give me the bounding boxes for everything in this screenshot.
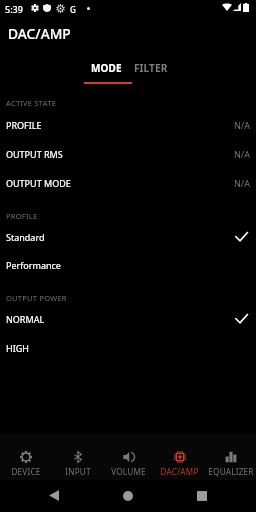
staticText: EQUALIZER <box>208 466 254 477</box>
button[interactable]: PROFILE <box>0 110 256 139</box>
staticText: NORMAL <box>6 313 45 325</box>
other: Selected <box>234 229 249 244</box>
button[interactable]: OUTPUT MODE <box>0 168 256 197</box>
staticText: N/A <box>234 148 250 160</box>
staticText: N/A <box>234 119 250 131</box>
staticText: HIGH <box>6 342 29 354</box>
staticText: Performance <box>6 259 61 271</box>
button[interactable]: VOLUME <box>103 434 154 480</box>
button[interactable]: EQUALIZER <box>205 434 256 480</box>
button[interactable]: Standard <box>0 222 256 251</box>
button[interactable]: NORMAL <box>0 304 256 333</box>
button[interactable]: MODE <box>82 61 130 83</box>
staticText: 5:39 <box>5 3 23 15</box>
button[interactable]: DEVICE <box>0 434 52 480</box>
button[interactable]: DAC/AMP <box>154 434 205 480</box>
button[interactable]: Performance <box>0 250 256 279</box>
other: Home <box>123 491 133 501</box>
staticText: MODE <box>91 61 122 75</box>
button[interactable]: FILTER <box>127 61 175 83</box>
button[interactable]: HIGH <box>0 333 256 362</box>
staticText: FILTER <box>134 61 168 75</box>
other: Selected <box>234 311 249 326</box>
staticText: OUTPUT MODE <box>6 177 71 189</box>
button[interactable]: INPUT <box>52 434 103 480</box>
staticText: DEVICE <box>11 466 41 477</box>
button[interactable]: OUTPUT RMS <box>0 139 256 168</box>
staticText: Standard <box>6 231 45 243</box>
staticText: INPUT <box>65 466 91 477</box>
staticText: OUTPUT POWER <box>6 293 67 303</box>
other: Back <box>49 490 59 501</box>
staticText: DAC/AMP <box>8 24 71 43</box>
staticText: ACTIVE STATE <box>6 98 57 108</box>
staticText: G <box>70 4 76 15</box>
staticText: DAC/AMP <box>160 466 199 477</box>
staticText: N/A <box>234 177 250 189</box>
staticText: PROFILE <box>6 119 42 131</box>
staticText: VOLUME <box>111 466 146 477</box>
staticText: OUTPUT RMS <box>6 148 63 160</box>
staticText: PROFILE <box>6 211 38 221</box>
